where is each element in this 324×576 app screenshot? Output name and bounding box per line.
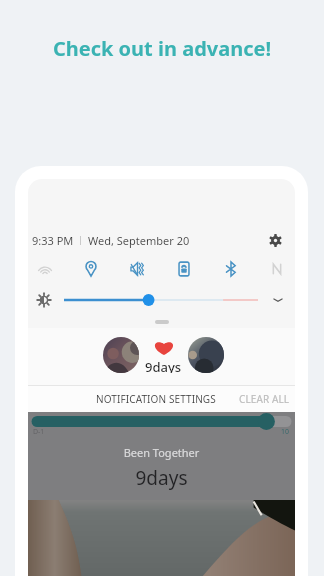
staticText: 9days [145,358,182,373]
button[interactable]: Photo 1 [103,337,139,373]
button[interactable]: NFC [264,256,290,282]
staticText: 9days [28,465,295,491]
staticText: Been Together [28,445,295,460]
button[interactable]: NOTIFICATION SETTINGS [96,392,216,406]
staticText: D-1 [33,427,45,437]
button[interactable]: Expand [270,292,286,308]
button[interactable]: CLEAR ALL [239,392,290,406]
button[interactable]: Wifi [32,256,58,282]
staticText: Wed, September 20 [88,233,190,248]
staticText: Check out in advance! [0,35,324,62]
button[interactable]: Settings [264,229,286,251]
staticText: 9:33 PM [32,233,74,248]
button[interactable]: Photo 2 [188,337,224,373]
button[interactable]: Sound off [125,256,151,282]
button[interactable]: Screen lock [171,256,197,282]
button[interactable]: Location [78,256,104,282]
staticText: 10 [281,427,290,437]
button[interactable]: Bluetooth [218,256,244,282]
